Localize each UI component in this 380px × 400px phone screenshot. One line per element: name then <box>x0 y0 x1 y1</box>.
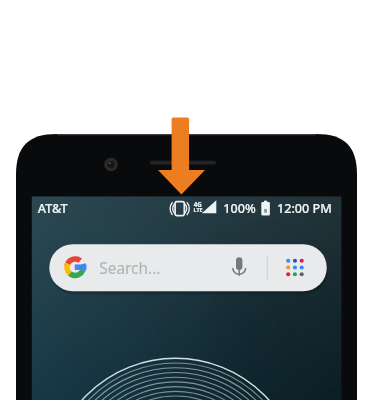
button[interactable]: Search by voice <box>224 248 258 286</box>
button[interactable]: Search <box>49 244 259 291</box>
button[interactable]: Google apps <box>277 244 327 291</box>
